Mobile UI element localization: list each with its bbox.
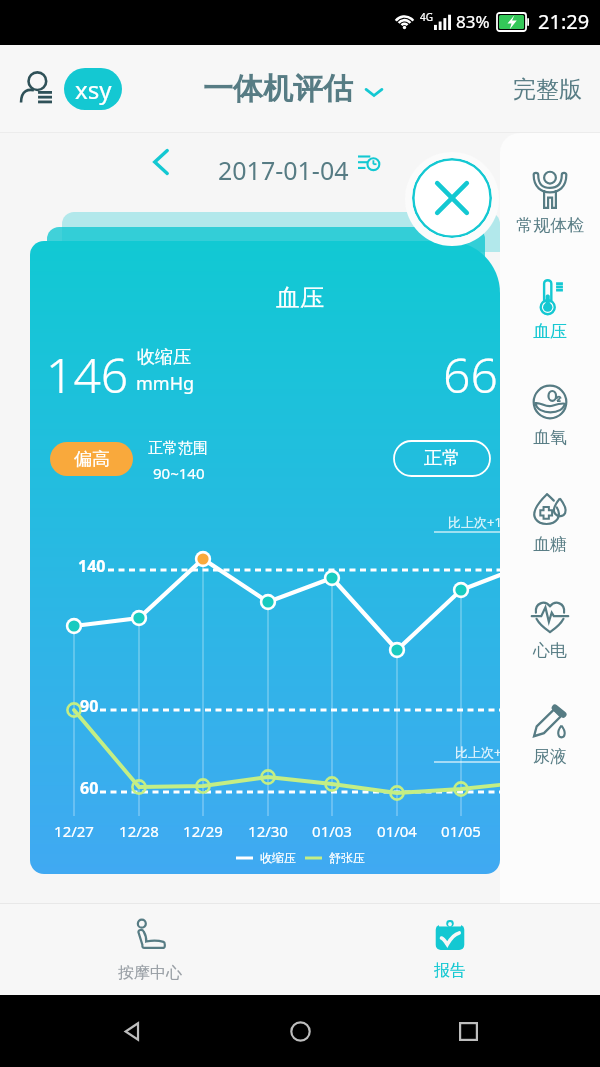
button[interactable]: Account menu bbox=[14, 67, 58, 111]
button[interactable]: Recent apps bbox=[446, 1009, 490, 1053]
staticText: mmHg bbox=[136, 371, 195, 396]
staticText: 12/27 bbox=[49, 821, 99, 841]
staticText: 66 bbox=[443, 342, 498, 407]
staticText: 血压 bbox=[533, 321, 567, 342]
staticText: 尿液 bbox=[533, 746, 567, 767]
button[interactable]: History records bbox=[352, 145, 386, 179]
staticText: 收缩压 bbox=[260, 850, 296, 865]
button[interactable]: 按摩中心 bbox=[0, 904, 300, 995]
button[interactable]: 正常 bbox=[394, 441, 490, 476]
button[interactable]: Previous day bbox=[141, 142, 181, 182]
staticText: 常规体检 bbox=[516, 215, 584, 236]
staticText: 比上次+13.0 bbox=[448, 513, 500, 531]
staticText: 83% bbox=[456, 10, 490, 33]
button[interactable]: 血压 bbox=[500, 261, 600, 357]
staticText: xsy bbox=[75, 73, 112, 106]
staticText: 报告 bbox=[434, 961, 466, 981]
staticText: 140 bbox=[78, 555, 106, 577]
button[interactable]: 尿液 bbox=[500, 686, 600, 782]
button[interactable]: Back bbox=[110, 1009, 154, 1053]
staticText: 一体机评估 bbox=[203, 70, 353, 108]
staticText: 01/04 bbox=[372, 821, 422, 841]
button[interactable]: xsy bbox=[64, 68, 122, 110]
staticText: 血糖 bbox=[533, 534, 567, 555]
button[interactable]: 报告 bbox=[300, 904, 600, 995]
button[interactable]: 血糖 bbox=[500, 474, 600, 570]
staticText: 收缩压 bbox=[137, 346, 191, 369]
staticText: 90~140 bbox=[153, 463, 205, 483]
button[interactable]: 心电 bbox=[500, 580, 600, 676]
staticText: 正常范围 bbox=[148, 439, 208, 458]
button[interactable]: 血压 bbox=[30, 241, 500, 874]
staticText: 21:29 bbox=[538, 8, 590, 35]
button[interactable]: Home bbox=[278, 1009, 322, 1053]
staticText: 完整版 bbox=[513, 75, 582, 104]
button[interactable]: 偏高 bbox=[50, 442, 133, 476]
staticText: 90 bbox=[80, 695, 99, 717]
button[interactable]: 血氧 bbox=[500, 367, 600, 463]
button[interactable]: 常规体检 bbox=[500, 155, 600, 251]
staticText: 舒张压 bbox=[329, 850, 365, 865]
button[interactable]: 一体机评估 bbox=[203, 70, 385, 108]
staticText: 146 bbox=[46, 342, 129, 407]
staticText: 12/30 bbox=[243, 821, 293, 841]
staticText: 比上次+3.0 bbox=[455, 743, 500, 761]
staticText: 血压 bbox=[200, 283, 400, 313]
staticText: 12/29 bbox=[178, 821, 228, 841]
staticText: 2017-01-04 bbox=[218, 153, 349, 187]
staticText: 偏高 bbox=[74, 448, 110, 471]
button[interactable]: 完整版 bbox=[509, 71, 586, 108]
staticText: 血氧 bbox=[533, 427, 567, 448]
staticText: 正常 bbox=[424, 447, 460, 470]
staticText: 4G bbox=[420, 10, 433, 24]
staticText: 按摩中心 bbox=[118, 963, 182, 983]
staticText: 01/05 bbox=[436, 821, 486, 841]
staticText: 心电 bbox=[533, 640, 567, 661]
button[interactable]: Close panel bbox=[412, 158, 492, 238]
staticText: 12/28 bbox=[114, 821, 164, 841]
staticText: 01/03 bbox=[307, 821, 357, 841]
staticText: 60 bbox=[80, 777, 99, 799]
